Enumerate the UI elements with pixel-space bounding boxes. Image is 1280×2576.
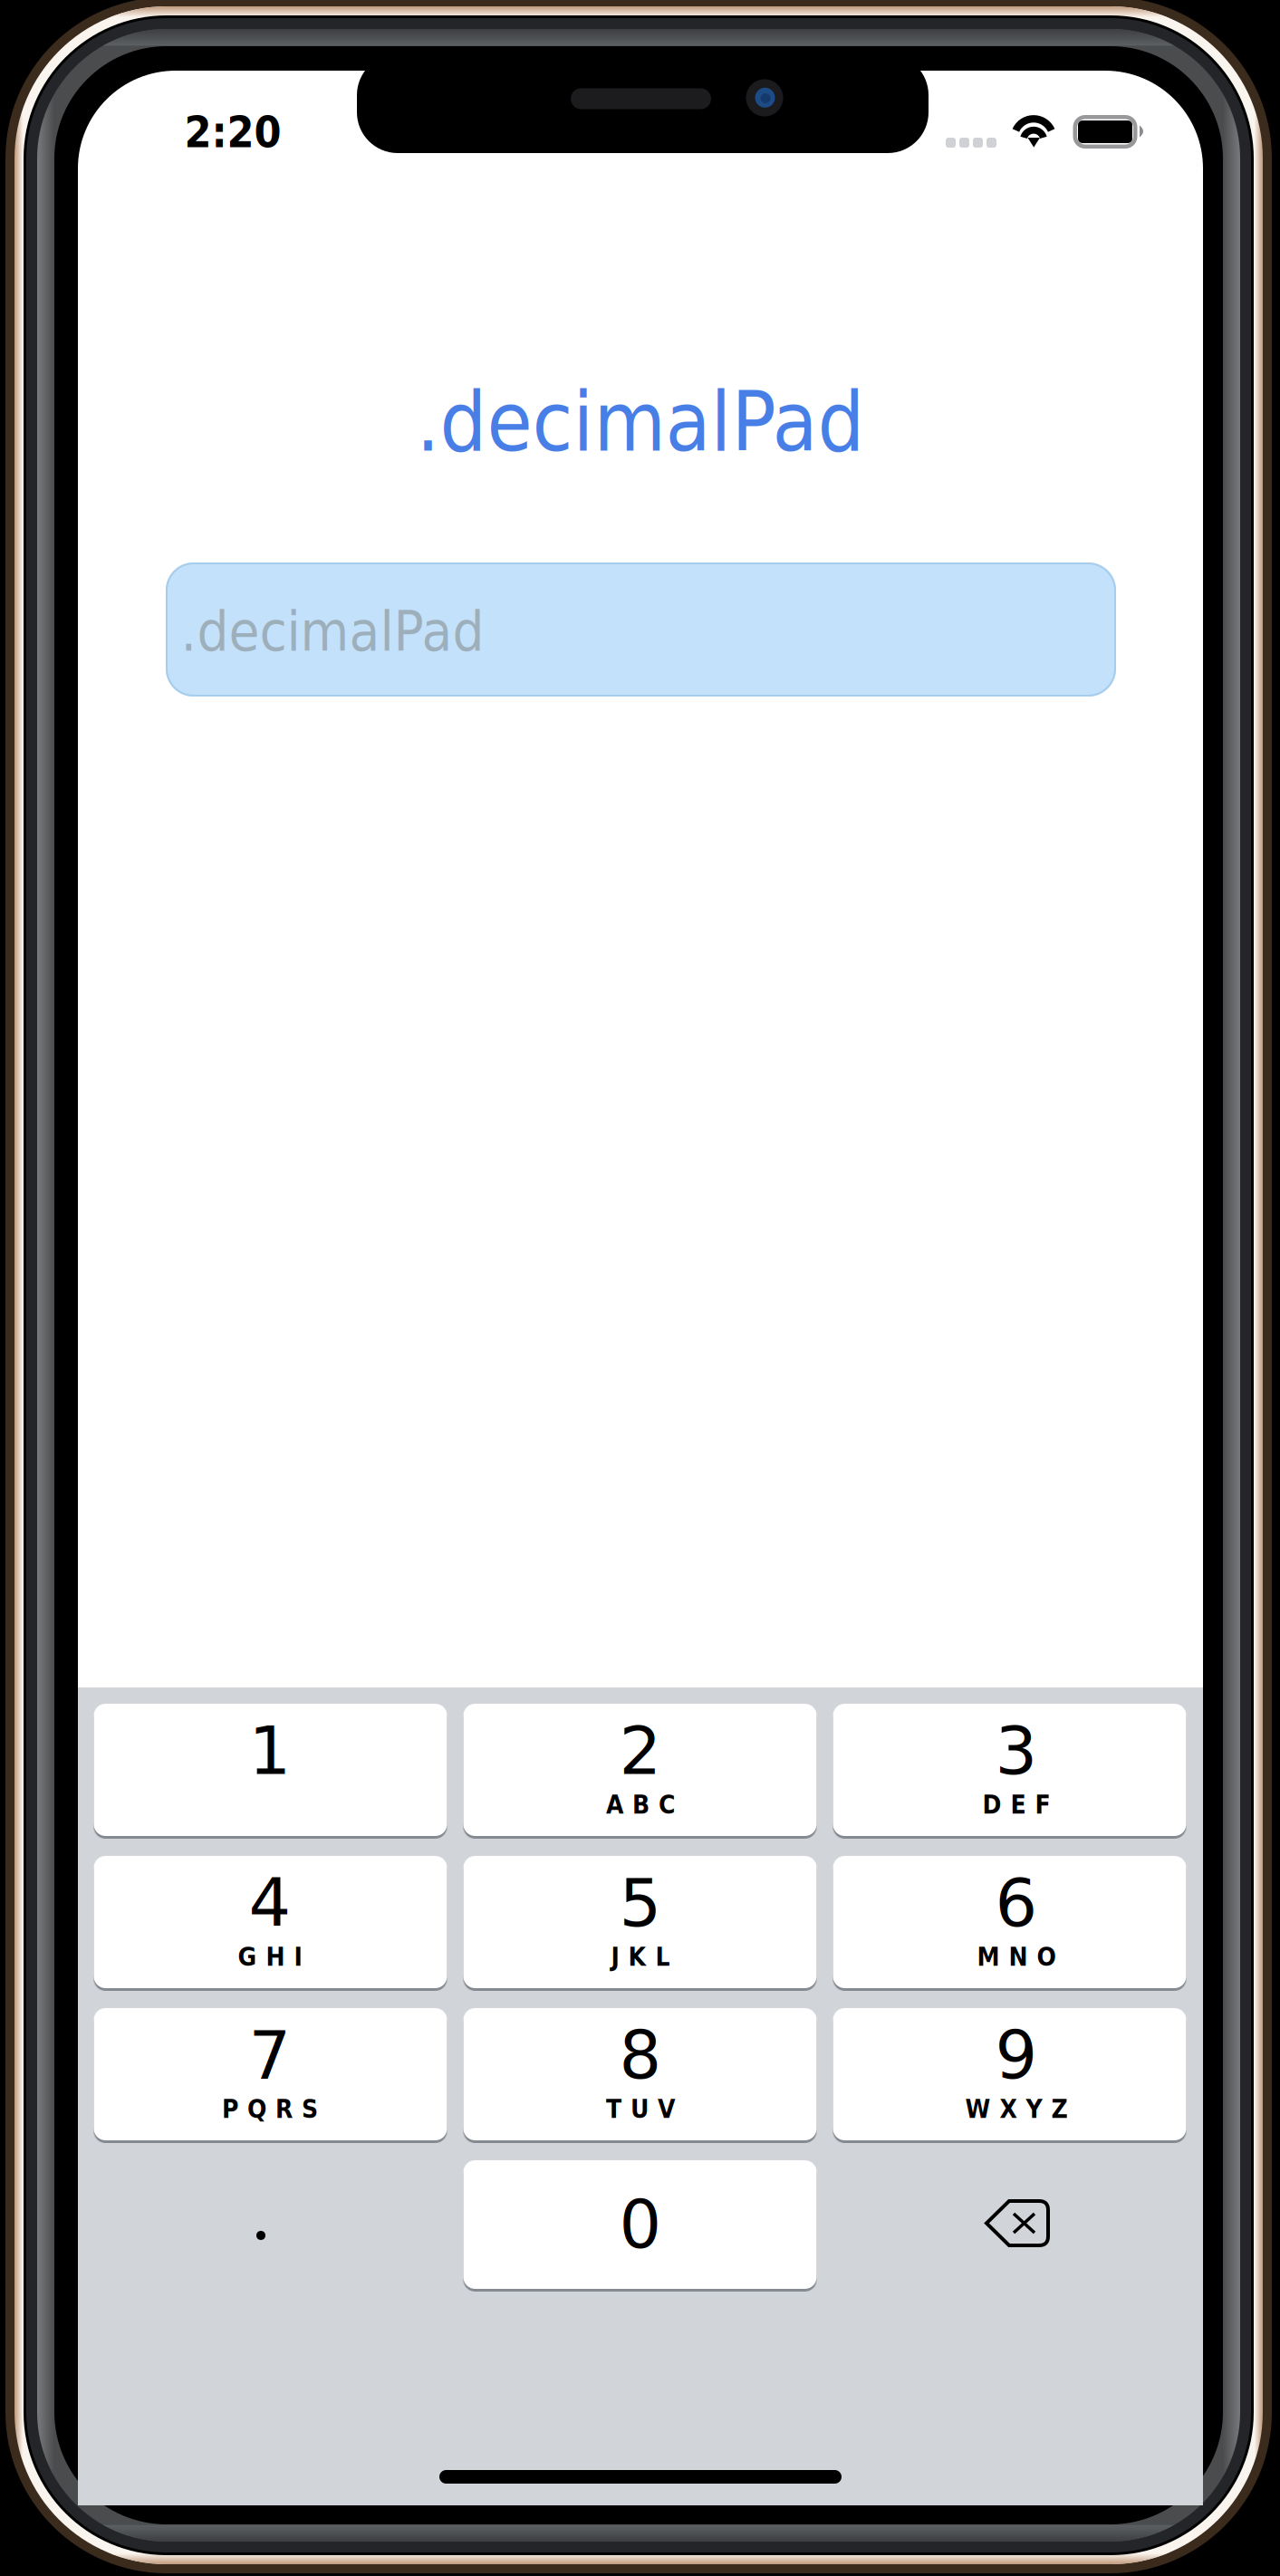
button[interactable]: 7 — [0, 0, 1280, 2576]
staticText: 4 — [249, 1864, 291, 1942]
staticText: DEF — [982, 1790, 1050, 1820]
button[interactable]: 0 — [0, 0, 1280, 2576]
staticText: MNO — [977, 1942, 1056, 1972]
button[interactable]: 5 — [0, 0, 1280, 2576]
button[interactable]: 3 — [0, 0, 1280, 2576]
button[interactable]: 1 — [0, 0, 1280, 2576]
staticText: 6 — [995, 1864, 1038, 1942]
button[interactable]: Decimal point — [0, 0, 1280, 2576]
staticText: 1 — [249, 1712, 291, 1790]
staticText: WXYZ — [965, 2094, 1068, 2124]
button[interactable]: .decimalPad — [0, 0, 1280, 2576]
staticText: 9 — [995, 2017, 1038, 2094]
button[interactable]: 2 — [0, 0, 1280, 2576]
staticText: .decimalPad — [416, 374, 865, 470]
staticText: 0 — [619, 2186, 662, 2263]
button[interactable]: 8 — [0, 0, 1280, 2576]
staticText: 2:20 — [184, 107, 281, 158]
button[interactable]: Delete — [0, 0, 1280, 2576]
staticText: 2 — [619, 1712, 662, 1790]
button[interactable]: 4 — [0, 0, 1280, 2576]
staticText: GHI — [238, 1942, 302, 1972]
staticText: 8 — [619, 2017, 662, 2094]
staticText: JKL — [611, 1942, 670, 1972]
staticText: .decimalPad — [181, 599, 484, 664]
staticText: ABC — [606, 1790, 675, 1820]
staticText: 3 — [995, 1712, 1038, 1790]
staticText: TUV — [606, 2094, 675, 2124]
staticText: PQRS — [222, 2094, 318, 2124]
staticText: 5 — [619, 1864, 662, 1942]
staticText: 7 — [249, 2017, 291, 2094]
button[interactable]: 6 — [0, 0, 1280, 2576]
button[interactable]: 9 — [0, 0, 1280, 2576]
